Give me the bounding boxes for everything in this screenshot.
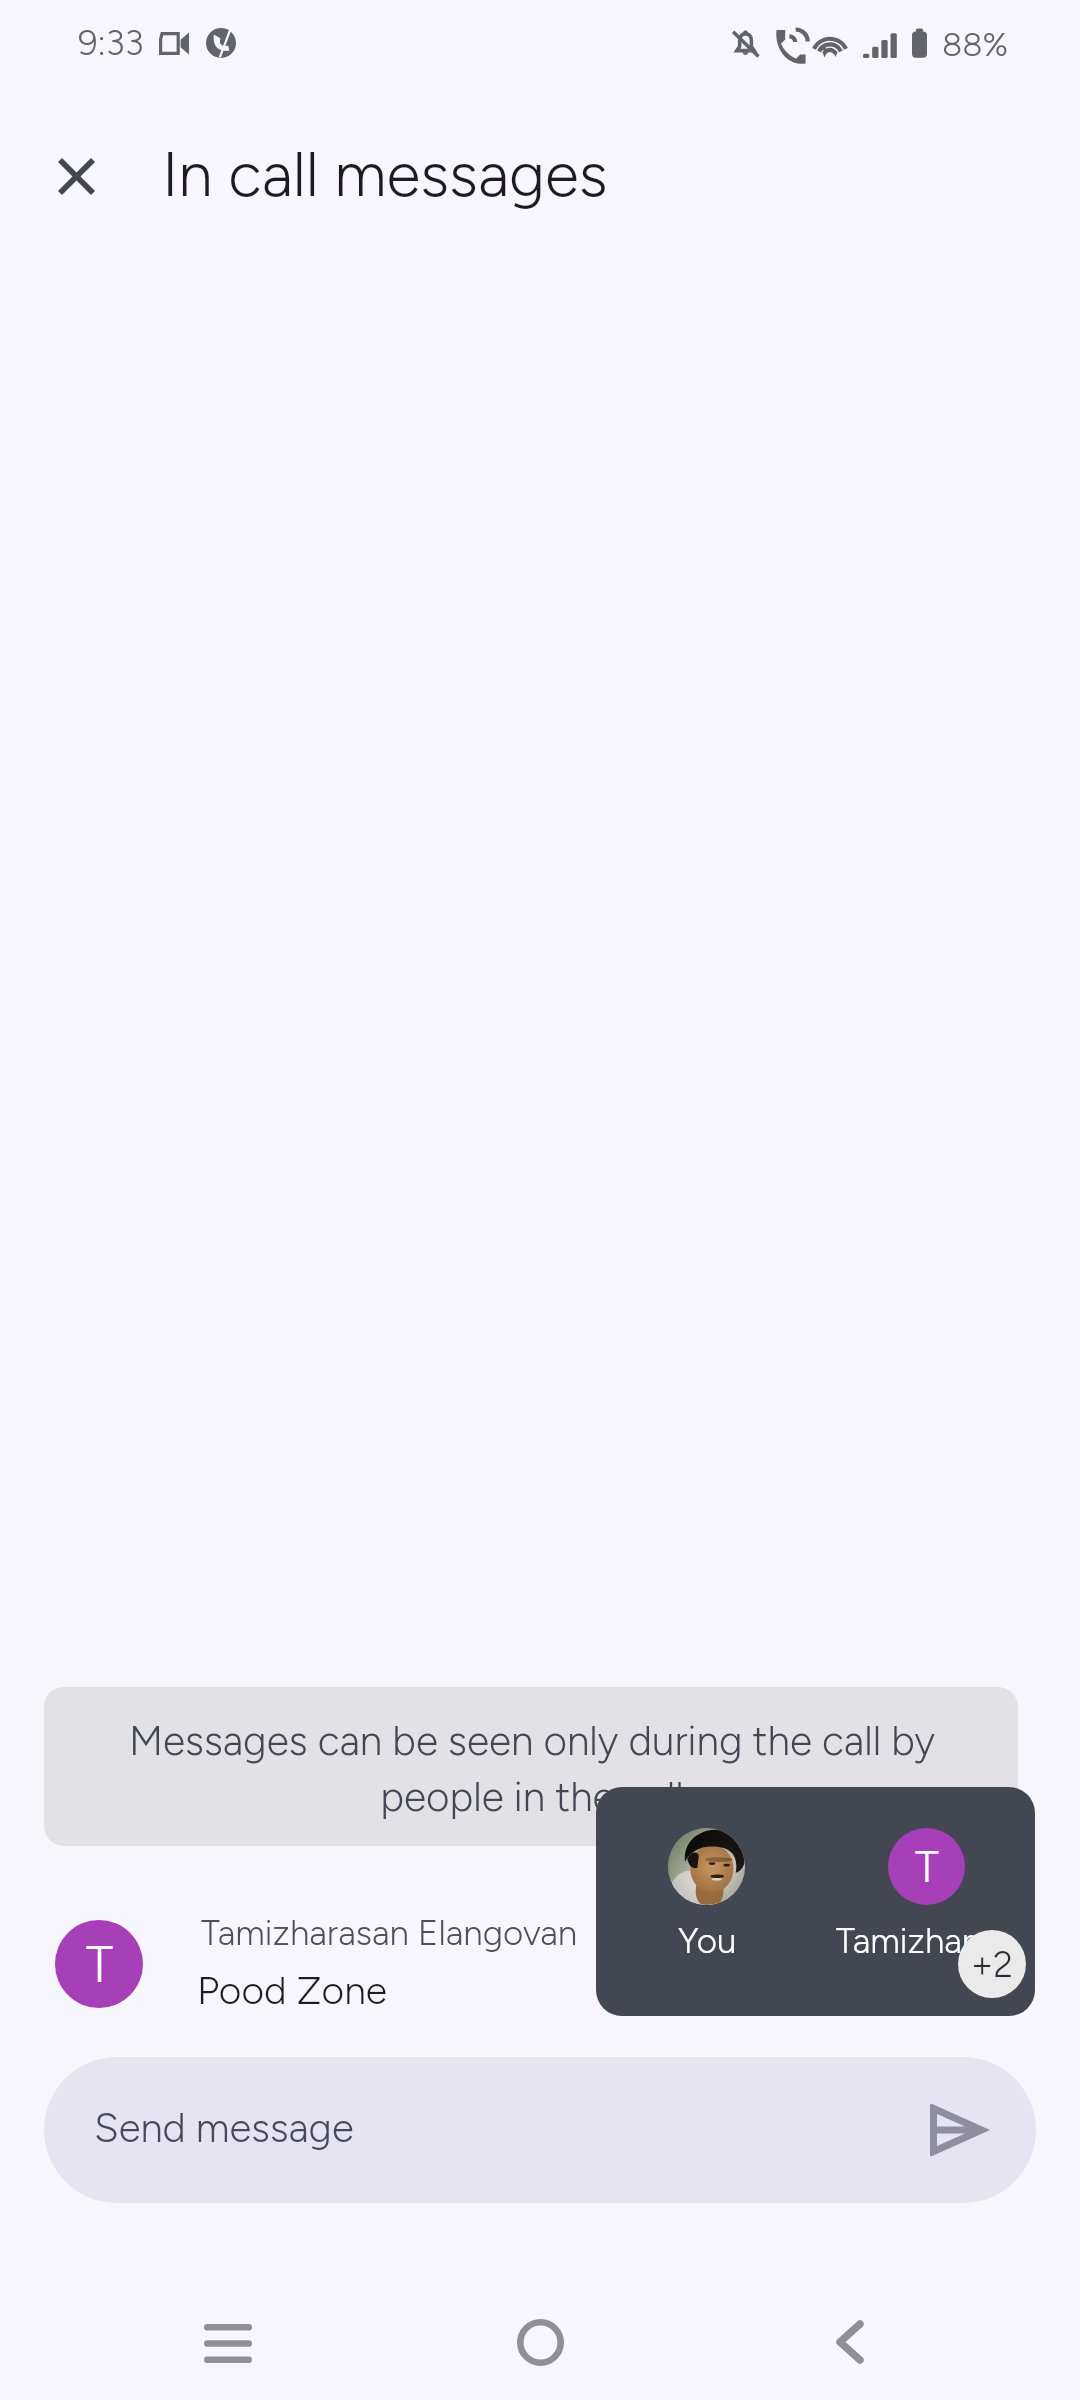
button[interactable]: Send (920, 2093, 994, 2167)
staticText: You (678, 1920, 737, 1962)
staticText: Pood Zone (197, 1967, 387, 2014)
button[interactable]: 2 more participants (958, 1930, 1026, 1998)
button[interactable]: Home (480, 2298, 600, 2386)
staticText: T (915, 1840, 939, 1893)
staticText: T (86, 1934, 113, 1994)
button[interactable]: T (44, 1906, 604, 2016)
staticText: Tamizhara (836, 1920, 991, 1962)
button[interactable]: Back (790, 2298, 910, 2386)
button[interactable]: Send message (44, 2057, 1036, 2203)
staticText: 9:33 (78, 22, 144, 64)
button[interactable]: Recent apps (168, 2297, 288, 2385)
staticText: Send message (94, 2104, 354, 2152)
staticText: In call messages (162, 137, 608, 211)
staticText: 88% (942, 25, 1009, 65)
staticText: Tamizharasan Elangovan (201, 1912, 578, 1954)
staticText: +2 (971, 1943, 1014, 1986)
button[interactable]: Close (30, 130, 122, 222)
staticText: Messages can be seen only during the cal… (129, 1717, 935, 1821)
button[interactable]: Call participants (596, 1787, 1035, 2016)
